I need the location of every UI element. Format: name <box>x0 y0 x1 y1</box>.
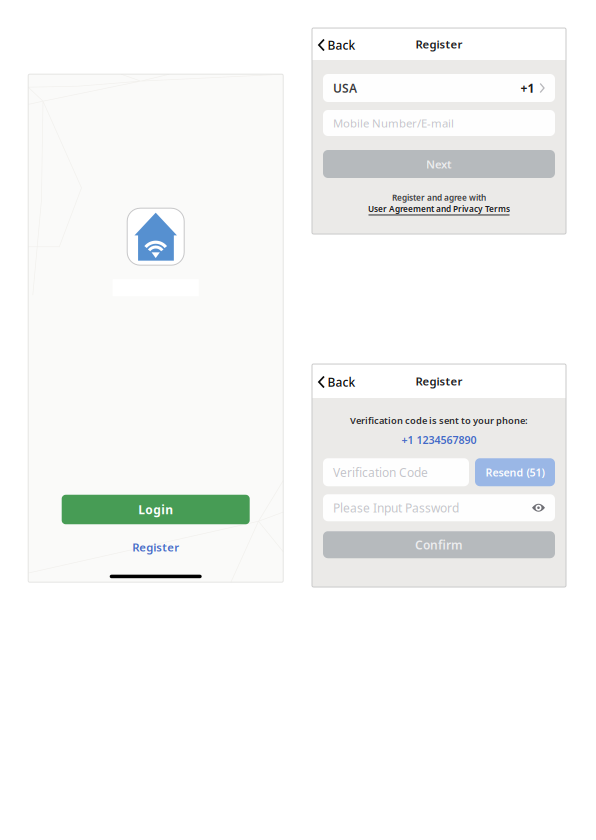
staticText: Confirm <box>415 537 463 553</box>
staticText: +1 1234567890 <box>401 433 476 447</box>
staticText: Please Input Password <box>333 500 459 516</box>
staticText: Login <box>138 501 173 518</box>
staticText: Register <box>415 373 462 389</box>
button[interactable]: Show password <box>532 503 545 513</box>
staticText: Register <box>132 539 179 555</box>
staticText: Verification code is sent to your phone: <box>350 414 528 427</box>
staticText: +1 <box>520 80 534 96</box>
staticText: Register <box>415 36 462 52</box>
button[interactable]: Back <box>312 367 363 395</box>
staticText: Back <box>327 37 355 53</box>
button[interactable]: Resend (51) <box>475 458 555 486</box>
button[interactable]: Confirm <box>323 531 555 558</box>
staticText: User Agreement and Privacy Terms <box>368 203 510 215</box>
button[interactable]: Back <box>312 30 363 58</box>
button[interactable]: Register <box>132 539 179 555</box>
button[interactable]: Next <box>323 150 555 178</box>
button[interactable]: USA <box>323 74 555 102</box>
staticText: Register and agree with <box>392 192 486 203</box>
staticText: Mobile Number/E-mail <box>333 115 454 131</box>
staticText: Next <box>426 156 452 172</box>
staticText: Back <box>327 374 355 390</box>
staticText: Verification Code <box>333 464 428 480</box>
staticText: Resend (51) <box>485 465 544 479</box>
button[interactable]: Login <box>62 495 250 524</box>
staticText: USA <box>333 80 357 96</box>
button[interactable]: User Agreement and Privacy Terms <box>368 203 510 215</box>
